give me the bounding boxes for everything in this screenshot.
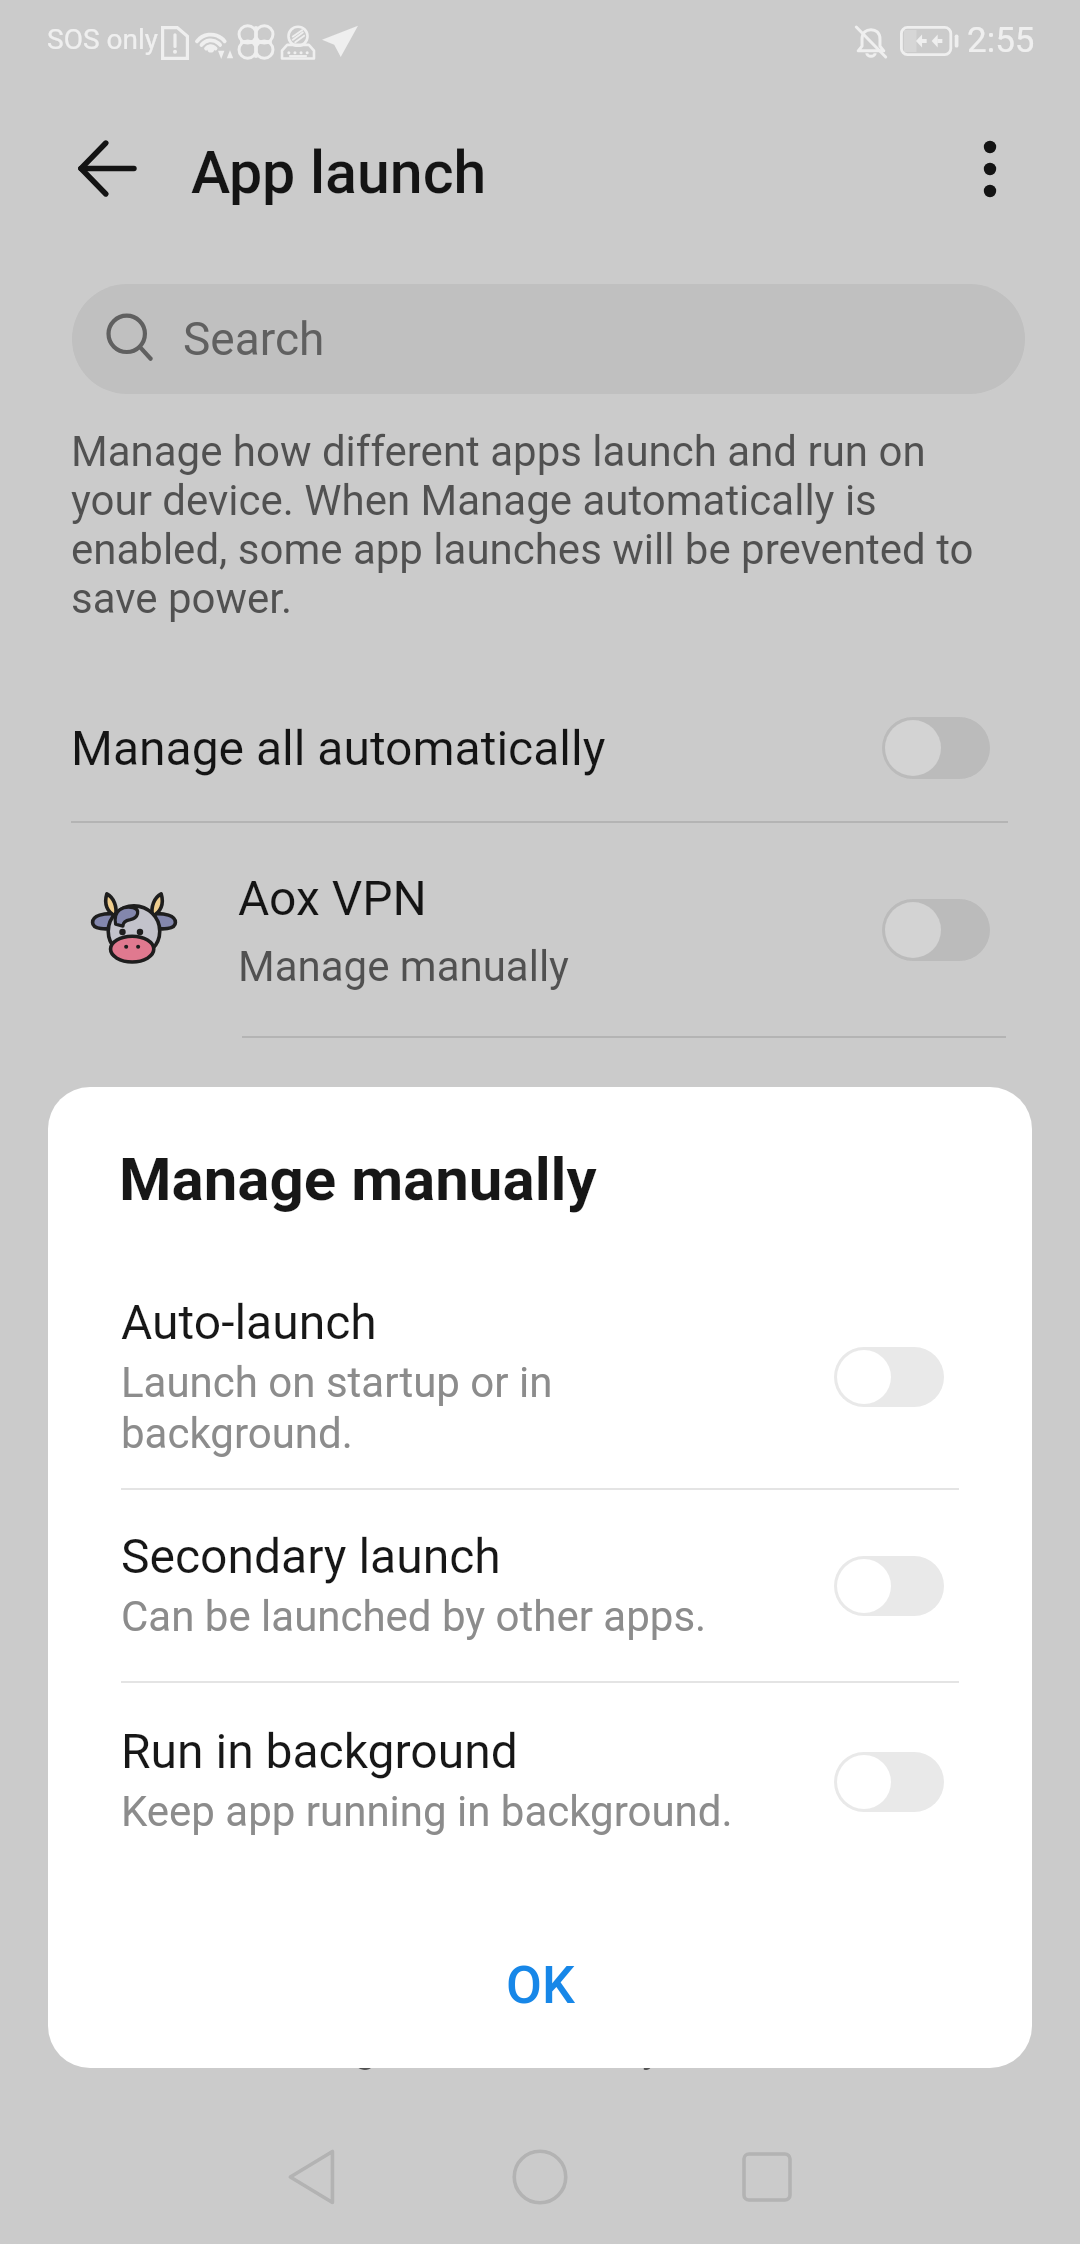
button[interactable]: Home	[480, 2117, 600, 2237]
staticText: Manage automatically	[248, 2022, 662, 2071]
button[interactable]: Auto-launch	[48, 1294, 1032, 1499]
button[interactable]: Recents	[707, 2117, 827, 2237]
staticText: Can be launched by other apps.	[121, 1592, 821, 1641]
button[interactable]: Manage all automatically	[0, 692, 1080, 822]
button[interactable]: Secondary launch	[48, 1528, 1032, 1684]
staticText: Run in background	[121, 1723, 518, 1779]
button[interactable]: Aox VPN	[0, 824, 1080, 1038]
button[interactable]: Search	[72, 284, 1025, 394]
staticText: Manage manually	[238, 942, 569, 991]
staticText: Aox VPN	[238, 870, 427, 926]
staticText: Launch on startup or in background.	[121, 1358, 641, 1459]
button[interactable]: Back	[56, 117, 158, 219]
button[interactable]: Run in background	[48, 1723, 1032, 1879]
staticText: App launch	[191, 138, 487, 207]
staticText: Manage how different apps launch and run…	[71, 427, 989, 623]
button[interactable]: Toggle	[834, 1752, 944, 1812]
staticText: Manage manually	[119, 1144, 597, 1214]
staticText: Manage all automatically	[71, 720, 606, 776]
button[interactable]: Toggle	[834, 1347, 944, 1407]
button[interactable]: Toggle	[882, 717, 990, 779]
button[interactable]: Aox Wallet	[0, 1902, 1080, 2124]
staticText: Search	[183, 312, 325, 366]
button[interactable]: OK	[48, 1920, 1032, 2050]
button[interactable]: Toggle	[834, 1556, 944, 1616]
button[interactable]: More options	[939, 118, 1041, 220]
button[interactable]: Back	[253, 2117, 373, 2237]
staticText: Auto-launch	[121, 1294, 377, 1350]
staticText: SOS only	[47, 23, 158, 56]
staticText: OK	[506, 1955, 575, 2016]
staticText: 2:55	[967, 20, 1035, 61]
staticText: Keep app running in background.	[121, 1787, 821, 1836]
button[interactable]: Toggle	[882, 899, 990, 961]
staticText: Secondary launch	[121, 1528, 501, 1584]
